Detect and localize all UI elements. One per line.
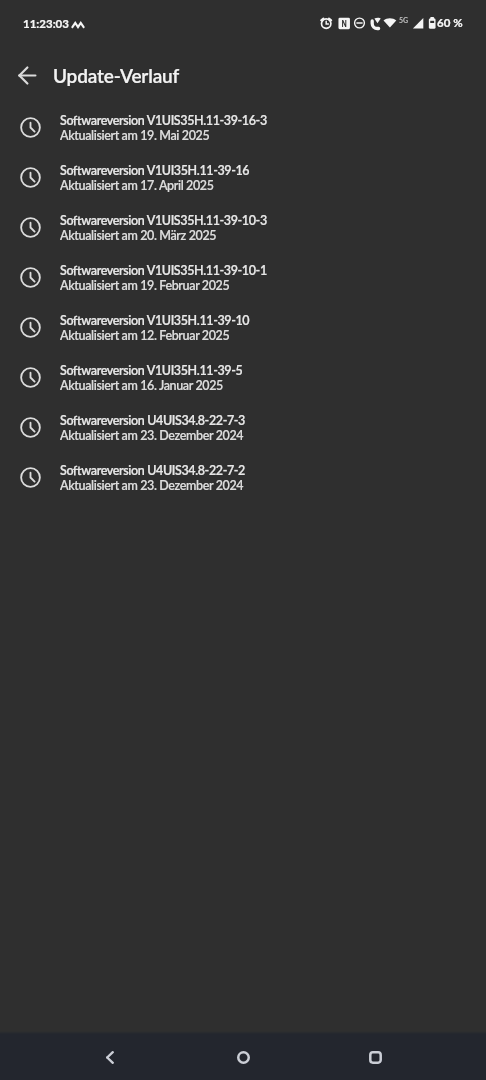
staticText: Softwareversion V1UIS35H.11-39-16-3 bbox=[60, 113, 267, 128]
button[interactable]: Back bbox=[82, 1034, 138, 1080]
staticText: Aktualisiert am 19. Mai 2025 bbox=[60, 128, 210, 143]
button[interactable]: Softwareversion V1UIS35H.11-39-10-1 bbox=[0, 253, 486, 303]
button[interactable]: Softwareversion V1UI35H.11-39-10 bbox=[0, 303, 486, 353]
staticText: Softwareversion U4UIS34.8-22-7-3 bbox=[60, 413, 245, 428]
staticText: 60 % bbox=[437, 16, 463, 30]
staticText: Aktualisiert am 17. April 2025 bbox=[60, 178, 214, 193]
button[interactable]: Back bbox=[5, 53, 49, 97]
button[interactable]: Softwareversion V1UI35H.11-39-16 bbox=[0, 153, 486, 203]
staticText: Aktualisiert am 23. Dezember 2024 bbox=[60, 478, 244, 493]
button[interactable]: Softwareversion U4UIS34.8-22-7-3 bbox=[0, 403, 486, 453]
staticText: Aktualisiert am 16. Januar 2025 bbox=[60, 378, 223, 393]
staticText: Aktualisiert am 12. Februar 2025 bbox=[60, 328, 230, 343]
staticText: Softwareversion V1UI35H.11-39-16 bbox=[60, 163, 250, 178]
staticText: Aktualisiert am 19. Februar 2025 bbox=[60, 278, 230, 293]
button[interactable]: Recent apps bbox=[347, 1034, 403, 1080]
button[interactable]: Softwareversion V1UIS35H.11-39-16-3 bbox=[0, 103, 486, 153]
button[interactable]: Softwareversion V1UIS35H.11-39-10-3 bbox=[0, 203, 486, 253]
button[interactable]: Softwareversion V1UI35H.11-39-5 bbox=[0, 353, 486, 403]
staticText: Update-Verlauf bbox=[53, 64, 180, 87]
button[interactable]: Home bbox=[215, 1034, 271, 1080]
staticText: Aktualisiert am 20. März 2025 bbox=[60, 228, 217, 243]
staticText: 11:23:03 bbox=[23, 17, 69, 31]
button[interactable]: Softwareversion U4UIS34.8-22-7-2 bbox=[0, 453, 486, 503]
staticText: Aktualisiert am 23. Dezember 2024 bbox=[60, 428, 244, 443]
staticText: Softwareversion V1UI35H.11-39-5 bbox=[60, 363, 243, 378]
staticText: Softwareversion V1UIS35H.11-39-10-3 bbox=[60, 213, 267, 228]
staticText: Softwareversion V1UI35H.11-39-10 bbox=[60, 313, 250, 328]
staticText: Softwareversion U4UIS34.8-22-7-2 bbox=[60, 463, 245, 478]
staticText: Softwareversion V1UIS35H.11-39-10-1 bbox=[60, 263, 267, 278]
staticText: 5G bbox=[399, 16, 409, 24]
